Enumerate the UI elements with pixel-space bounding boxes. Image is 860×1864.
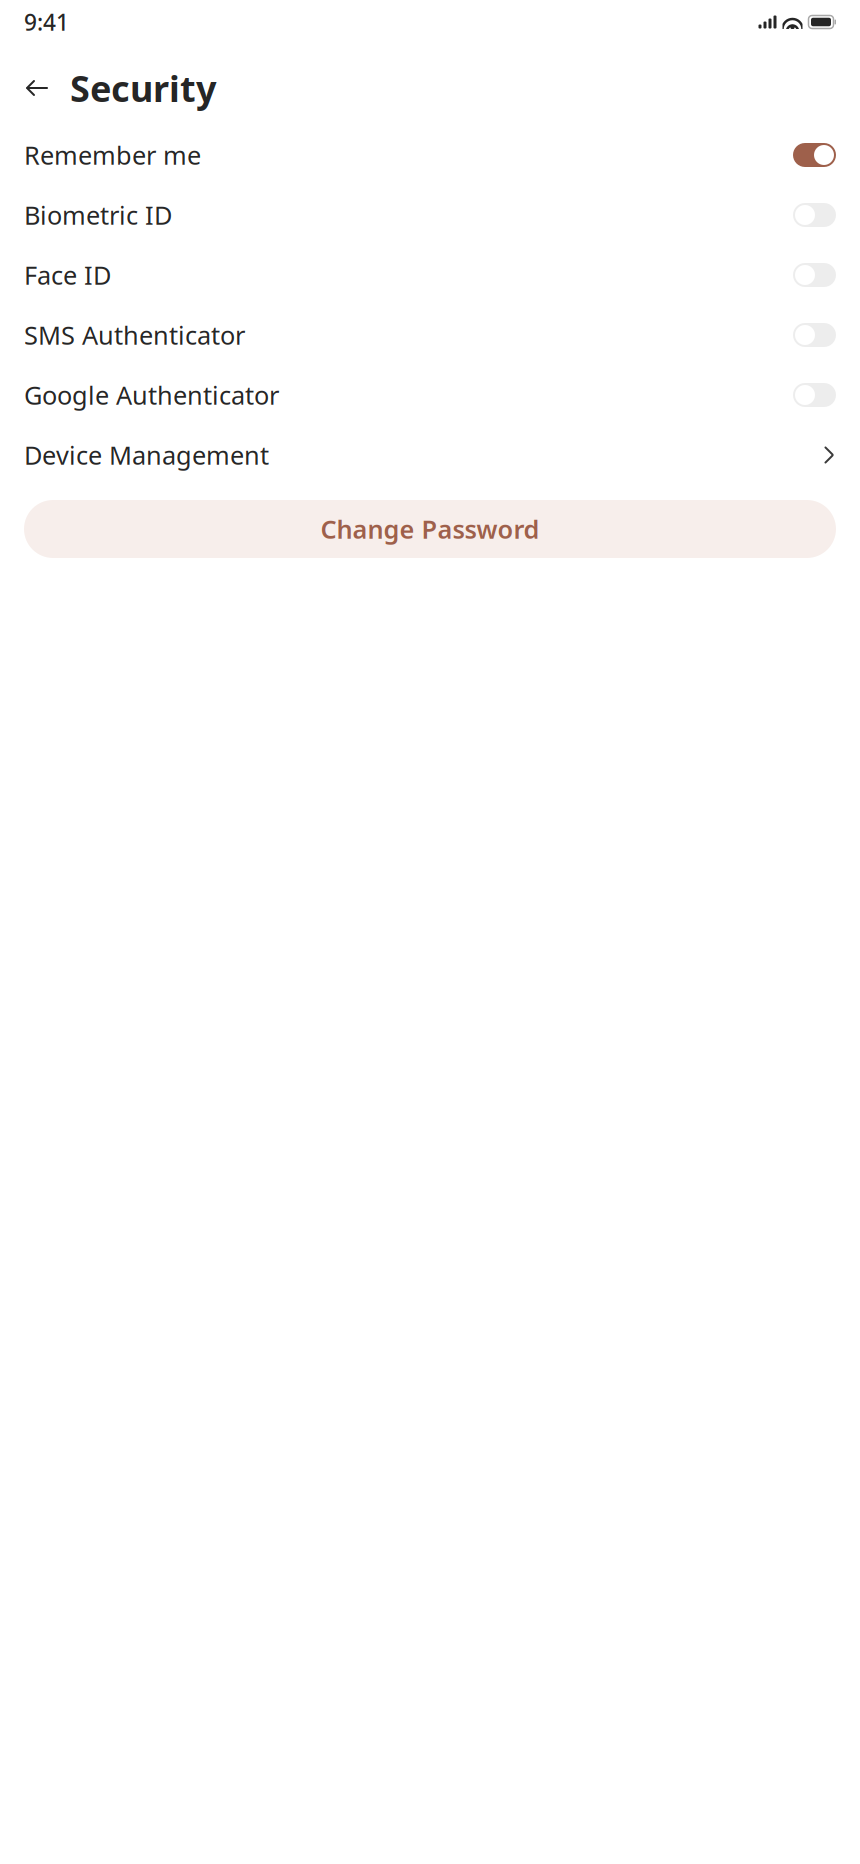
staticText: SMS Authenticator <box>24 318 245 352</box>
button[interactable]: Remember me <box>0 130 860 180</box>
button[interactable]: Back <box>24 68 54 108</box>
staticText: Device Management <box>24 438 269 472</box>
staticText: 9:41 <box>24 7 69 37</box>
button[interactable]: Biometric ID <box>0 190 860 240</box>
button[interactable]: SMS Authenticator <box>0 310 860 360</box>
button[interactable]: Google Authenticator <box>0 370 860 420</box>
staticText: Google Authenticator <box>24 378 279 412</box>
staticText: Biometric ID <box>24 198 172 232</box>
staticText: Security <box>70 64 217 112</box>
button[interactable]: Face ID <box>0 250 860 300</box>
staticText: Change Password <box>320 512 539 546</box>
staticText: Remember me <box>24 138 201 172</box>
button[interactable]: Device Management <box>0 430 860 480</box>
staticText: Face ID <box>24 258 111 292</box>
button[interactable]: Change Password <box>24 500 836 558</box>
